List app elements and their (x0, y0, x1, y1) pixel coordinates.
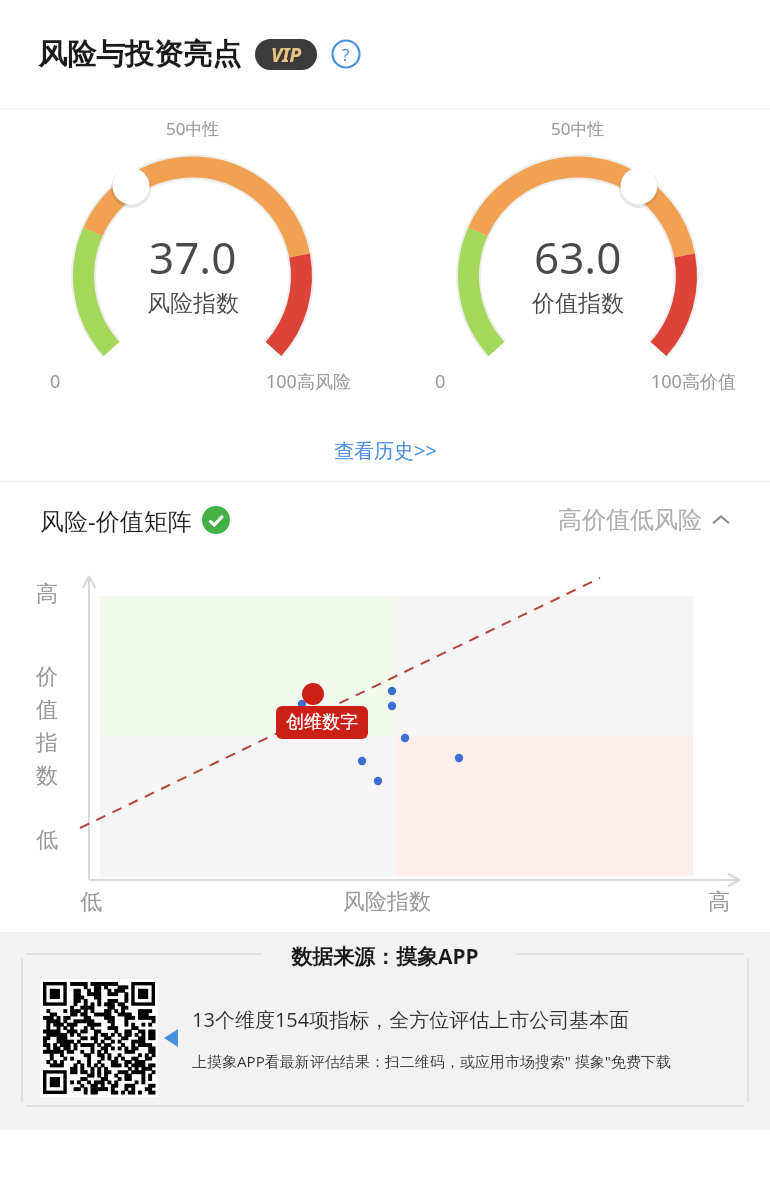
staticText: 指 (36, 729, 58, 757)
staticText: 高 (36, 580, 58, 608)
staticText: 100高风险 (266, 369, 351, 394)
staticText: 高价值低风险 (558, 505, 702, 535)
staticText: 风险指数 (147, 289, 239, 318)
staticText: 上摸象APP看最新评估结果：扫二维码，或应用市场搜索" 摸象"免费下载 (192, 1051, 671, 1071)
staticText: VIP (271, 42, 302, 68)
staticText: 风险指数 (343, 888, 431, 916)
staticText: 低 (80, 888, 102, 916)
staticText: 值 (36, 696, 58, 724)
button[interactable]: 查看历史>> (318, 429, 453, 472)
button[interactable]: 创维数字 (276, 706, 368, 739)
staticText: 低 (36, 826, 58, 854)
staticText: 价 (36, 663, 58, 691)
button[interactable]: 高价值低风险 (558, 505, 730, 535)
staticText: 37.0 (149, 227, 237, 287)
staticText: 50中性 (166, 117, 220, 140)
staticText: 数 (36, 762, 58, 790)
button[interactable]: 帮助 (331, 39, 361, 69)
staticText: ? (342, 43, 350, 66)
staticText: 创维数字 (286, 711, 358, 734)
button[interactable]: VIP (255, 39, 317, 70)
staticText: 风险-价值矩阵 (40, 504, 192, 537)
staticText: 高 (708, 888, 730, 916)
staticText: 0 (435, 369, 446, 394)
staticText: 数据来源：摸象APP (291, 942, 479, 971)
staticText: 风险与投资亮点 (38, 36, 241, 73)
staticText: 100高价值 (651, 369, 736, 394)
staticText: 13个维度154项指标，全方位评估上市公司基本面 (192, 1006, 630, 1033)
staticText: 查看历史>> (334, 437, 437, 464)
staticText: 63.0 (534, 227, 622, 287)
staticText: 50中性 (551, 117, 605, 140)
staticText: 价值指数 (532, 289, 624, 318)
staticText: 0 (50, 369, 61, 394)
